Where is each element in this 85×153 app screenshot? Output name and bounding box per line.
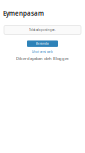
staticText: Diberdayakan oleh Blogger.: [16, 56, 69, 61]
button[interactable]: Beranda: [27, 40, 58, 47]
staticText: Eymenpasam: [3, 9, 44, 17]
staticText: Lihat versi web: [32, 50, 53, 54]
staticText: Tidak ada postingan.: [29, 28, 56, 32]
button[interactable]: Lihat versi web: [0, 50, 85, 54]
staticText: Beranda: [36, 42, 49, 45]
